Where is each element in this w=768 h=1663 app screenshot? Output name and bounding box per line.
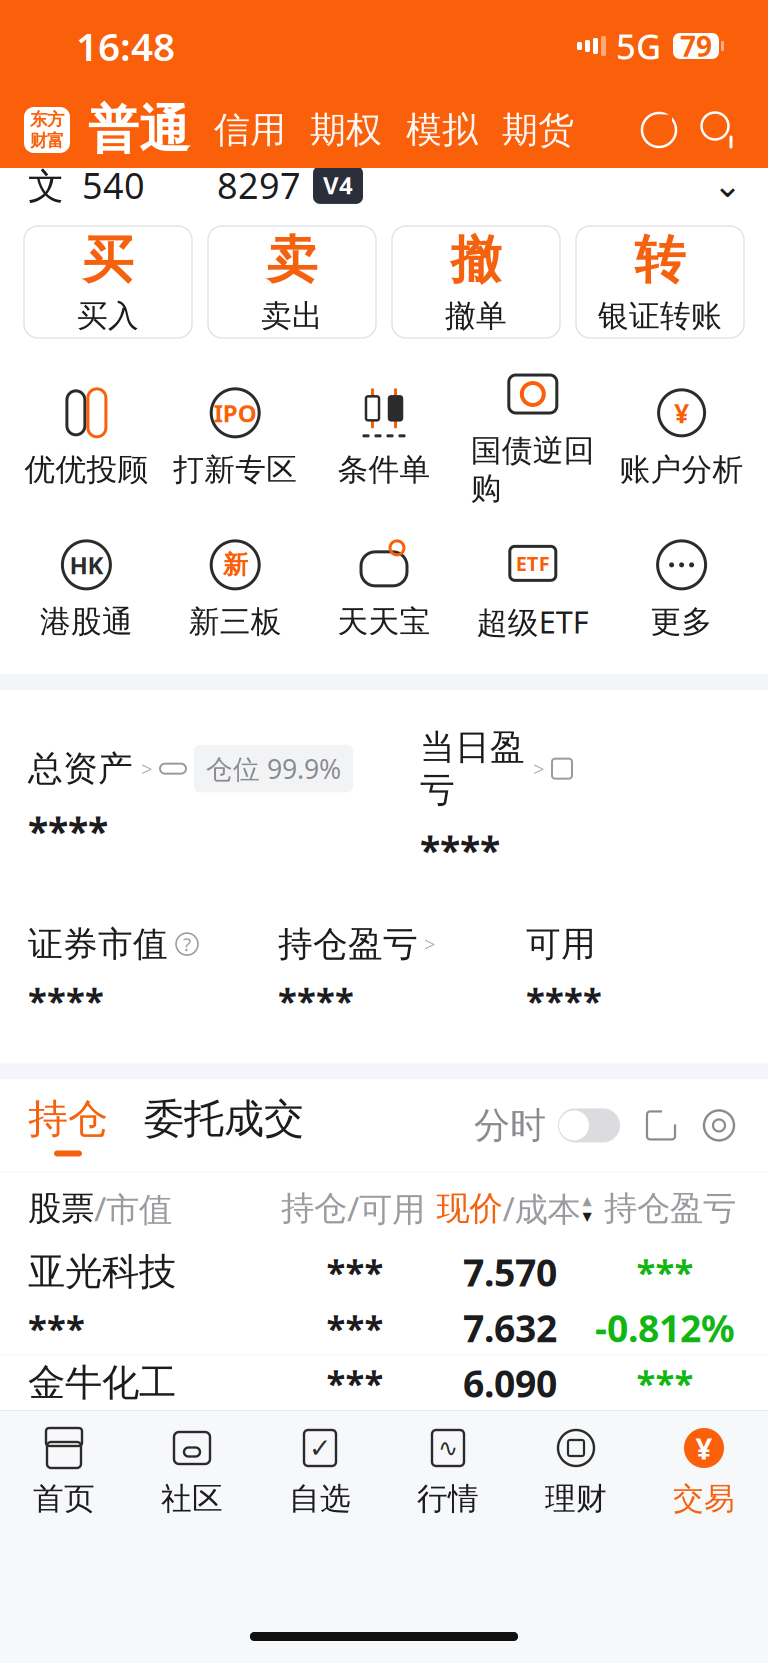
staticText: 持仓盈亏 bbox=[278, 923, 418, 965]
staticText: ETF bbox=[516, 550, 550, 577]
button[interactable]: 现价 bbox=[428, 1186, 600, 1231]
staticText: /成本 bbox=[502, 1186, 580, 1231]
staticText: 财富 bbox=[30, 130, 64, 151]
button[interactable]: 搜索 bbox=[696, 107, 742, 153]
staticText: 6.090 bbox=[463, 1358, 557, 1408]
staticText: > bbox=[533, 755, 544, 782]
staticText: 卖 bbox=[266, 229, 317, 291]
staticText: 股票 bbox=[28, 1188, 94, 1229]
button[interactable]: 撤 bbox=[392, 226, 560, 338]
staticText: *** bbox=[326, 1249, 383, 1295]
staticText: 16:48 bbox=[76, 20, 175, 72]
staticText: 持仓 bbox=[281, 1188, 347, 1229]
staticText: ? bbox=[183, 932, 191, 956]
staticText: 鹏翎股份 bbox=[28, 1471, 176, 1517]
button[interactable]: 信用 bbox=[190, 108, 286, 152]
staticText: 79 bbox=[680, 27, 712, 65]
staticText: 7.632 bbox=[463, 1303, 557, 1353]
staticText: **** bbox=[526, 977, 602, 1023]
button[interactable]: 委托成交 bbox=[108, 1094, 304, 1156]
staticText: 持仓盈亏 bbox=[604, 1188, 736, 1229]
button[interactable]: 优优投顾 bbox=[12, 379, 161, 494]
staticText: **** bbox=[28, 977, 104, 1023]
staticText: 模拟 bbox=[406, 108, 478, 152]
button[interactable]: 东方财富 bbox=[24, 107, 70, 153]
button[interactable]: ¥ bbox=[640, 1424, 768, 1518]
staticText: 普通 bbox=[88, 99, 190, 161]
button[interactable]: ∿ bbox=[384, 1424, 512, 1518]
button[interactable]: 刷新 bbox=[636, 107, 682, 153]
staticText: 账户分析 bbox=[620, 451, 744, 488]
staticText: ▲ bbox=[582, 1194, 591, 1207]
staticText: HK bbox=[69, 549, 103, 581]
button[interactable]: HK bbox=[12, 531, 161, 647]
staticText: ¥ bbox=[674, 395, 689, 430]
staticText: 条件单 bbox=[337, 451, 430, 488]
button[interactable]: 设置 bbox=[696, 1102, 742, 1148]
staticText: *** bbox=[636, 1360, 693, 1406]
button[interactable]: 期货 bbox=[478, 108, 574, 152]
button[interactable]: 社区 bbox=[128, 1424, 256, 1518]
staticText: ▼ bbox=[582, 1209, 591, 1223]
button[interactable]: IPO bbox=[161, 379, 310, 494]
staticText: 理财 bbox=[545, 1480, 607, 1518]
staticText: 港股通 bbox=[40, 603, 133, 641]
staticText: 行情 bbox=[417, 1480, 479, 1518]
staticText: *** bbox=[28, 1305, 85, 1351]
button[interactable]: 卖 bbox=[208, 226, 376, 338]
staticText: 期权 bbox=[310, 108, 382, 152]
button[interactable]: 买 bbox=[24, 226, 192, 338]
staticText: IPO bbox=[214, 397, 257, 429]
staticText: 撤单 bbox=[445, 297, 507, 335]
staticText: ✓ bbox=[309, 1433, 331, 1463]
button[interactable]: 天天宝 bbox=[310, 531, 458, 647]
staticText: 期货 bbox=[502, 108, 574, 152]
staticText: 亚光科技 bbox=[28, 1249, 176, 1295]
button[interactable]: 持仓 bbox=[0, 1094, 108, 1156]
staticText: 分时 bbox=[474, 1103, 546, 1147]
button[interactable]: 金牛化工 bbox=[0, 1355, 768, 1466]
staticText: *** bbox=[636, 1471, 693, 1517]
staticText: ⌄ bbox=[713, 165, 742, 205]
staticText: **** bbox=[420, 825, 500, 875]
staticText: 7.570 bbox=[463, 1247, 557, 1297]
button[interactable]: 新 bbox=[161, 531, 310, 647]
staticText: 自选 bbox=[289, 1480, 351, 1518]
button[interactable]: ¥ bbox=[607, 379, 756, 494]
staticText: 打新专区 bbox=[173, 451, 297, 488]
button[interactable]: 模拟 bbox=[382, 108, 478, 152]
button[interactable]: 更多 bbox=[607, 531, 756, 647]
button[interactable]: ETF bbox=[458, 529, 607, 648]
staticText: *** bbox=[326, 1416, 383, 1462]
button[interactable]: 转 bbox=[576, 226, 744, 338]
staticText: 新 bbox=[223, 549, 248, 580]
staticText: 社区 bbox=[161, 1480, 223, 1518]
staticText: 文 540 8297 bbox=[28, 161, 301, 209]
button[interactable]: 鹏翎股份 bbox=[0, 1466, 768, 1577]
staticText: 当日盈亏 bbox=[420, 726, 525, 811]
button[interactable]: 亚光科技 bbox=[0, 1244, 768, 1355]
staticText: 可用 bbox=[526, 923, 596, 965]
button[interactable]: 普通 bbox=[70, 99, 190, 161]
staticText: > bbox=[424, 931, 435, 957]
button[interactable]: 展开 bbox=[638, 1102, 684, 1148]
staticText: 证券市值 bbox=[28, 923, 168, 965]
staticText: 优优投顾 bbox=[24, 451, 148, 488]
staticText: 委托成交 bbox=[144, 1094, 304, 1143]
button[interactable]: 理财 bbox=[512, 1424, 640, 1518]
button[interactable]: 分时 bbox=[474, 1103, 620, 1147]
button[interactable]: 期权 bbox=[286, 108, 382, 152]
button[interactable]: 条件单 bbox=[310, 379, 458, 494]
button[interactable]: 国债逆回购 bbox=[458, 360, 607, 513]
staticText: 卖出 bbox=[261, 297, 323, 335]
staticText: 5.210 bbox=[463, 1469, 557, 1519]
button[interactable]: 首页 bbox=[0, 1424, 128, 1518]
button[interactable]: ✓ bbox=[256, 1424, 384, 1518]
staticText: /市值 bbox=[94, 1186, 172, 1231]
staticText: 银证转账 bbox=[598, 297, 722, 335]
staticText: 转 bbox=[634, 229, 685, 291]
